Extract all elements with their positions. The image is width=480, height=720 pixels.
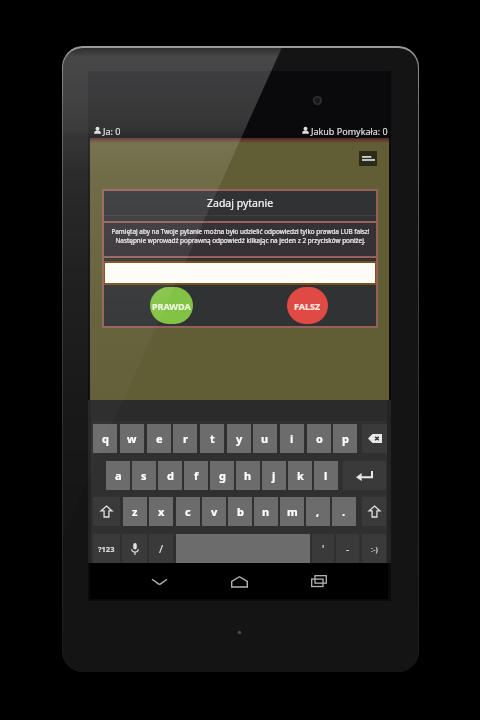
button[interactable]: Back [142,563,176,599]
button[interactable]: Shift [362,497,386,526]
button[interactable]: b [228,497,252,526]
staticText: PRAWDA [152,300,191,312]
button[interactable]: v [202,497,226,526]
staticText: i [290,431,294,446]
staticText: n [262,504,270,519]
staticText: s [141,468,147,483]
button[interactable]: n [254,497,278,526]
button[interactable]: d [158,461,182,490]
staticText: m [287,504,298,519]
button[interactable]: h [236,461,260,490]
button[interactable]: f [184,461,208,490]
staticText: l [324,468,328,483]
button[interactable]: p [333,424,357,453]
staticText: j [272,468,276,483]
staticText: b [237,504,244,519]
button[interactable]: Shift [93,497,120,526]
button[interactable]: Recent apps [302,563,336,599]
button[interactable]: k [288,461,312,490]
staticText: r [183,431,188,446]
staticText: Zadaj pytanie [207,196,274,210]
button[interactable]: Apostrophe [312,534,334,563]
button[interactable]: t [200,424,224,453]
staticText: ?123 [98,544,115,554]
staticText: f [194,468,199,483]
staticText: , [316,504,320,519]
button[interactable]: y [227,424,251,453]
button[interactable]: u [253,424,277,453]
button[interactable]: PRAWDA [150,287,193,324]
button[interactable]: j [262,461,286,490]
staticText: h [244,468,252,483]
button[interactable]: z [123,497,147,526]
staticText: d [167,468,174,483]
button[interactable]: a [106,461,130,490]
button[interactable]: w [120,424,144,453]
button[interactable]: i [280,424,304,453]
button[interactable]: g [210,461,234,490]
button[interactable]: x [149,497,173,526]
button[interactable]: Symbols [93,534,120,563]
staticText: u [261,431,269,446]
button[interactable]: Minus [336,534,359,563]
staticText: q [102,431,109,446]
staticText: / [159,541,164,556]
staticText: c [185,504,191,519]
staticText: y [236,431,243,446]
staticText: Pamiętaj aby na Twoje pytanie można było… [111,227,370,245]
button[interactable]: Enter [343,461,386,490]
button[interactable]: Questions list [359,151,377,166]
button[interactable]: Backspace [362,424,387,453]
staticText: ' [322,542,325,556]
staticText: p [342,431,349,446]
button[interactable]: o [307,424,331,453]
button[interactable]: e [147,424,171,453]
button[interactable]: , [306,497,330,526]
staticText: FALSZ [294,300,321,312]
staticText: g [219,468,226,483]
button[interactable]: c [176,497,200,526]
button[interactable]: m [280,497,304,526]
staticText: z [132,504,138,519]
staticText: e [156,431,163,446]
staticText: Ja: 0 [103,125,121,137]
button[interactable]: r [173,424,197,453]
button[interactable]: l [314,461,338,490]
staticText: w [127,431,137,446]
staticText: k [297,468,304,483]
staticText: . [342,504,346,519]
button[interactable]: Emoji [362,534,386,563]
staticText: :-) [371,544,378,554]
staticText: o [316,431,323,446]
staticText: - [346,542,350,556]
button[interactable]: Voice input [122,534,147,563]
button[interactable]: FALSZ [287,287,328,324]
button[interactable]: . [332,497,356,526]
staticText: x [158,504,165,519]
staticText: a [115,468,122,483]
staticText: v [211,504,218,519]
staticText: t [210,431,215,446]
button[interactable]: s [132,461,156,490]
button[interactable]: q [93,424,117,453]
button[interactable]: Home [222,563,256,599]
staticText: Jakub Pomykała: 0 [311,125,388,137]
button[interactable]: Slash [149,534,173,563]
